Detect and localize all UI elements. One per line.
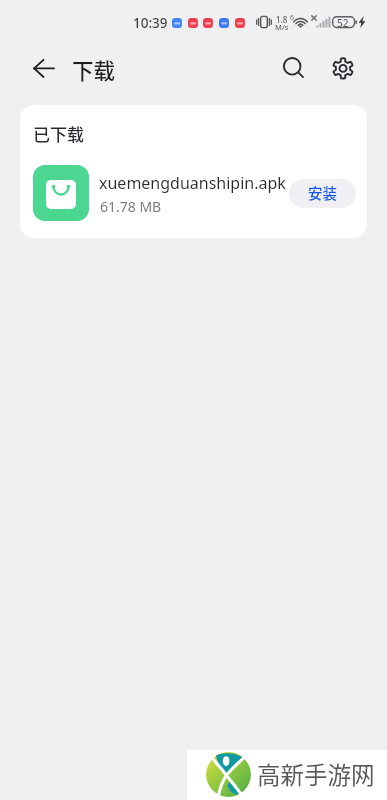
staticText: xuemengduanshipin.apk (99, 172, 286, 194)
staticText: 52 (337, 16, 349, 30)
staticText: 6 (290, 13, 295, 23)
staticText: 61.78 MB (100, 197, 162, 216)
staticText: 安装 (308, 182, 337, 203)
staticText: M/s (275, 22, 289, 32)
button[interactable]: Settings (323, 48, 363, 88)
button[interactable]: Back (24, 48, 64, 88)
staticText: 下载 (72, 54, 116, 85)
button[interactable]: Search (274, 48, 314, 88)
staticText: 1.8 (276, 14, 288, 25)
staticText: 已下载 (33, 121, 84, 146)
button[interactable]: 安装 (289, 179, 356, 208)
staticText: 高新手游网 (257, 757, 375, 791)
staticText: 10:39 (133, 14, 168, 32)
